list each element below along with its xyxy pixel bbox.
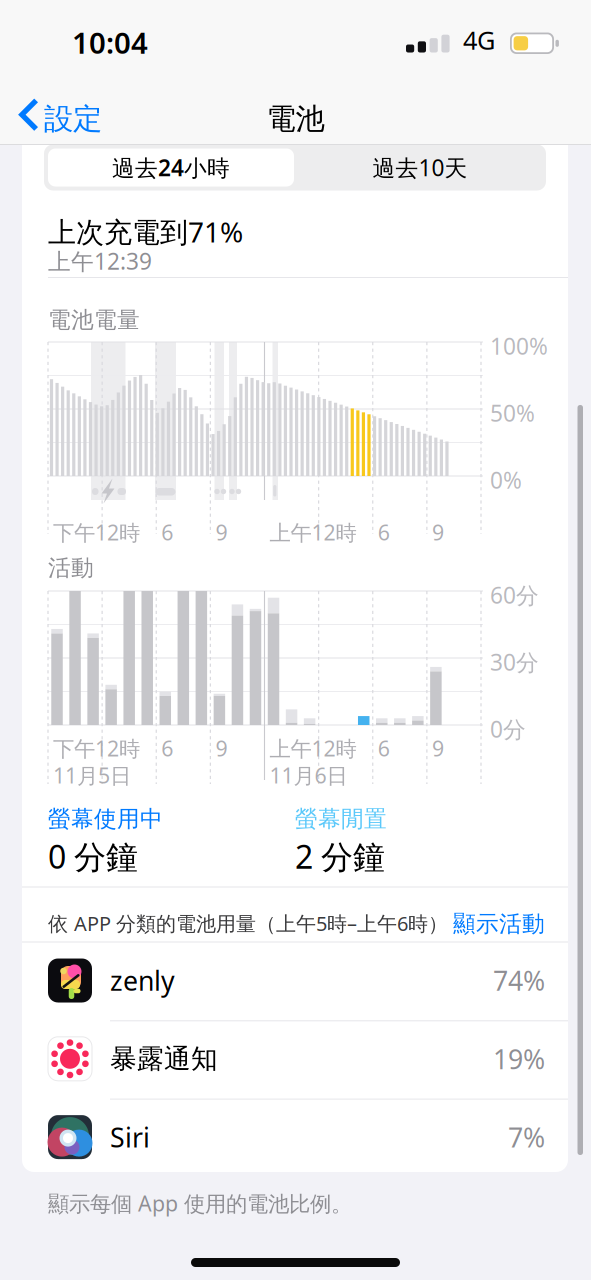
staticText: 30分 (490, 647, 539, 677)
staticText: Siri (110, 1119, 150, 1155)
staticText: 過去24小時 (112, 152, 230, 182)
staticText: 暴露通知 (110, 1042, 218, 1075)
button[interactable]: 過去24小時 (48, 148, 294, 186)
staticText: 2 分鐘 (295, 835, 385, 877)
staticText: 依 APP 分類的電池用量（上午5時–上午6時） (48, 910, 448, 937)
staticText: 活動 (48, 554, 94, 582)
staticText: 11月5日 (53, 761, 131, 789)
staticText: 螢幕使用中 (48, 805, 163, 833)
staticText: 顯示每個 App 使用的電池比例。 (48, 1189, 352, 1217)
staticText: 上午12時 (269, 734, 356, 762)
staticText: 9 (215, 518, 227, 546)
staticText: 6 (378, 518, 390, 546)
staticText: 0% (490, 465, 522, 495)
button[interactable]: 顯示活動 (425, 910, 545, 938)
staticText: 9 (432, 518, 444, 546)
staticText: 過去10天 (372, 152, 467, 182)
staticText: 74% (493, 963, 545, 998)
button[interactable]: 暴露通知 (22, 1020, 568, 1097)
staticText: 11月6日 (269, 761, 347, 789)
staticText: 100% (490, 331, 548, 361)
staticText: 設定 (44, 101, 102, 137)
staticText: 60分 (490, 580, 539, 610)
staticText: 上次充電到71% (48, 213, 243, 250)
staticText: 19% (493, 1041, 545, 1076)
button[interactable]: 過去10天 (296, 146, 544, 188)
staticText: 顯示活動 (453, 910, 545, 938)
staticText: 6 (378, 734, 390, 762)
staticText: 50% (490, 398, 535, 428)
staticText: 7% (508, 1119, 545, 1155)
staticText: 電池 (266, 101, 324, 137)
staticText: 6 (161, 734, 173, 762)
staticText: 6 (161, 518, 173, 546)
staticText: 下午12時 (53, 734, 140, 762)
staticText: 上午12時 (269, 518, 356, 546)
staticText: 下午12時 (53, 518, 140, 546)
staticText: 9 (215, 734, 227, 762)
staticText: zenly (110, 963, 175, 998)
staticText: 4G (463, 23, 495, 57)
button[interactable]: 設定 (0, 0, 110, 140)
button[interactable]: Siri (22, 1099, 568, 1176)
staticText: 上午12:39 (48, 246, 152, 276)
staticText: 9 (432, 734, 444, 762)
staticText: 螢幕閒置 (295, 805, 387, 833)
staticText: 0 分鐘 (48, 835, 138, 877)
staticText: 0分 (490, 714, 526, 744)
button[interactable]: zenly (22, 942, 568, 1019)
staticText: 10:04 (72, 23, 148, 62)
staticText: 電池電量 (48, 306, 140, 334)
